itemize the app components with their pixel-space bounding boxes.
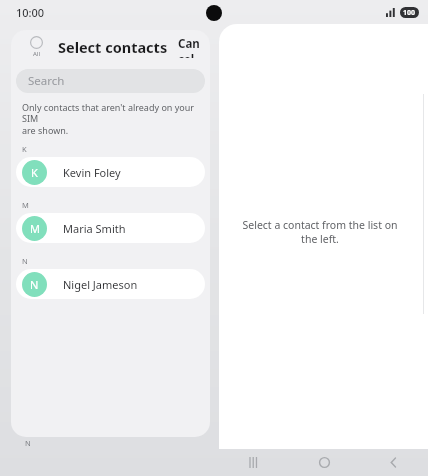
- button[interactable]: Recents: [237, 449, 271, 476]
- button[interactable]: K: [16, 157, 205, 187]
- staticText: Maria Smith: [63, 221, 126, 236]
- staticText: M: [30, 221, 40, 236]
- staticText: Select contacts: [58, 37, 168, 57]
- staticText: Kevin Foley: [63, 165, 121, 180]
- staticText: 100: [403, 8, 416, 18]
- button[interactable]: N: [16, 269, 205, 299]
- staticText: M: [22, 200, 29, 210]
- staticText: Only contacts that aren't already on you…: [22, 101, 202, 137]
- staticText: K: [31, 165, 38, 180]
- button[interactable]: M: [16, 213, 205, 243]
- staticText: N: [22, 256, 28, 266]
- staticText: Nigel Jameson: [63, 277, 138, 292]
- staticText: Search: [28, 73, 65, 89]
- staticText: N: [25, 438, 31, 448]
- staticText: Select a contact from the list on the le…: [242, 218, 398, 246]
- button[interactable]: Home: [307, 449, 341, 476]
- button[interactable]: Back: [376, 449, 410, 476]
- staticText: 10:00: [16, 5, 45, 20]
- button[interactable]: Search: [16, 69, 205, 93]
- button[interactable]: Select all: [22, 36, 50, 58]
- staticText: K: [22, 144, 27, 154]
- staticText: Cancel: [178, 36, 200, 58]
- staticText: All: [33, 50, 40, 58]
- button[interactable]: Cancel: [168, 30, 210, 64]
- staticText: N: [30, 277, 39, 292]
